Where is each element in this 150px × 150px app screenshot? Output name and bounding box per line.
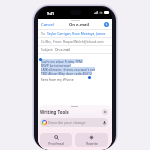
staticText: Raquel.Welsh@icloud.com bbox=[63, 39, 104, 43]
staticText: On e-mail bbox=[55, 47, 71, 51]
staticText: 9:41 bbox=[47, 11, 55, 16]
button[interactable]: Cancel bbox=[41, 22, 55, 28]
staticText: To: bbox=[41, 31, 47, 35]
staticText: Proofread bbox=[48, 141, 64, 145]
staticText: Sushi my place Friday 7PM bbox=[41, 59, 83, 63]
staticText: RSVP by tomorrow! bbox=[41, 63, 71, 67]
button[interactable]: Proofread bbox=[40, 133, 72, 147]
staticText: Sent from my iPhone bbox=[41, 77, 74, 81]
staticText: Cc/Bcc, From: bbox=[41, 39, 63, 43]
staticText: On e-mail bbox=[69, 22, 90, 28]
button[interactable]: Rewrite bbox=[75, 133, 108, 147]
staticText: TBD Alison May door code 45612 bbox=[41, 71, 92, 75]
staticText: Rewrite bbox=[86, 141, 98, 145]
button[interactable]: Send bbox=[104, 22, 109, 27]
staticText: Subject: bbox=[41, 47, 55, 51]
button[interactable]: Describe your change bbox=[40, 118, 108, 127]
staticText: Writing Tools bbox=[40, 109, 69, 115]
button[interactable]: Close bbox=[102, 109, 108, 115]
staticText: Taylor Carrigan, Rose Montoya, James Rya… bbox=[47, 31, 109, 35]
staticText: Describe your change bbox=[48, 120, 86, 125]
staticText: LMK allergies, things you won't eat bbox=[41, 67, 95, 71]
